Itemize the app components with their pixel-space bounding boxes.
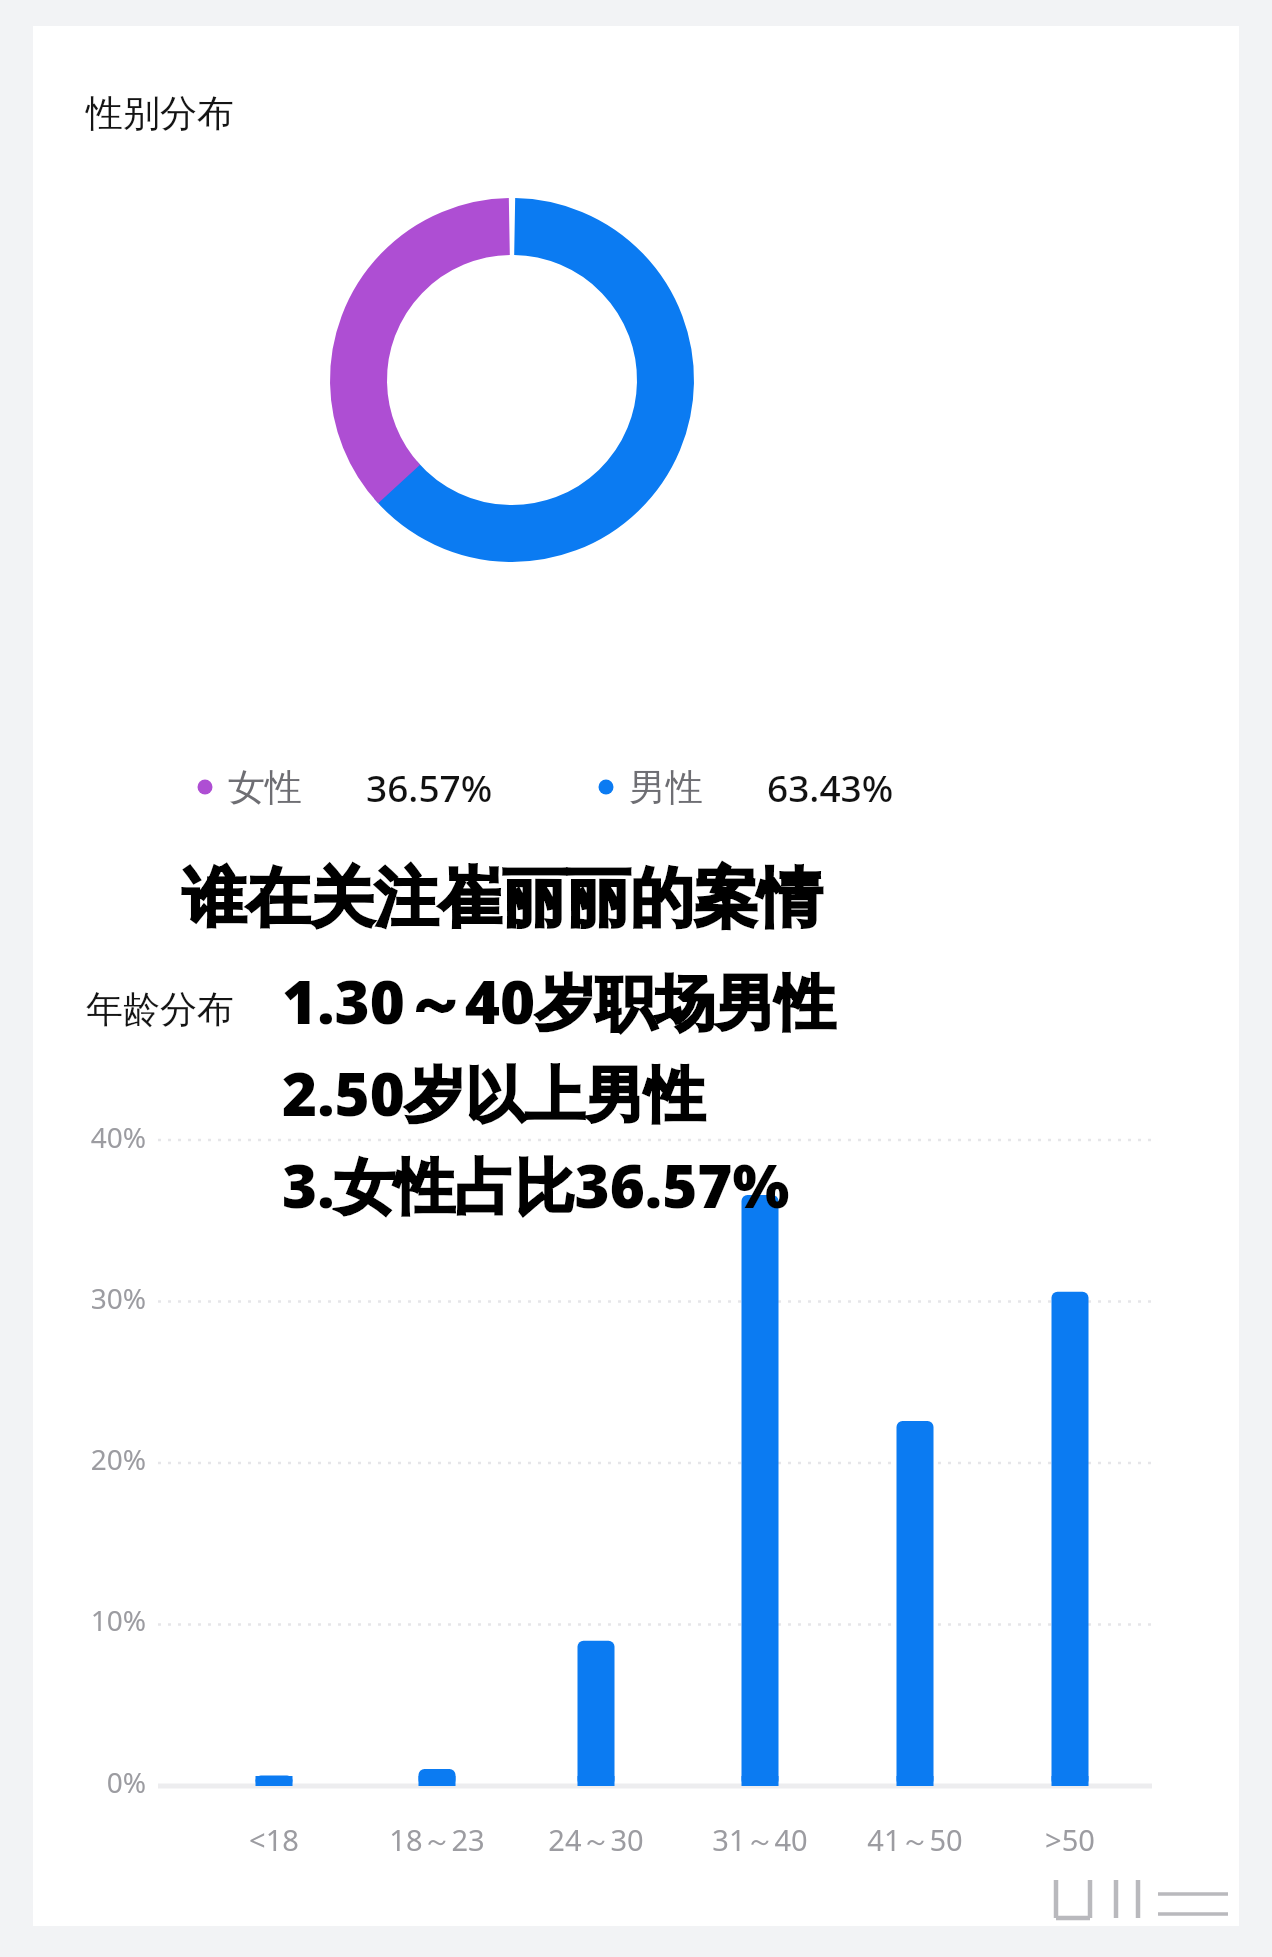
- staticText: 20%: [30, 1440, 146, 1478]
- staticText: 31～40: [670, 1820, 850, 1860]
- staticText: 2.50岁以上男性: [282, 1052, 705, 1134]
- staticText: 10%: [30, 1601, 146, 1639]
- staticText: 0%: [30, 1763, 146, 1801]
- button[interactable]: 年龄分布: [86, 986, 234, 1033]
- staticText: 1.30～40岁职场男性: [282, 960, 836, 1042]
- staticText: >50: [980, 1820, 1160, 1859]
- staticText: 男性: [629, 764, 703, 811]
- staticText: 41～50: [825, 1820, 1005, 1860]
- button[interactable]: 男性: [597, 762, 894, 812]
- staticText: <18: [184, 1820, 364, 1859]
- staticText: 女性: [228, 764, 302, 811]
- button[interactable]: 女性: [196, 762, 493, 812]
- other: App watermark: [1046, 1872, 1236, 1930]
- staticText: 3.女性占比36.57%: [282, 1144, 790, 1226]
- button[interactable]: 性别分布: [86, 90, 234, 137]
- staticText: 年龄分布: [86, 986, 234, 1033]
- staticText: 40%: [30, 1118, 146, 1156]
- staticText: 36.57%: [366, 762, 493, 812]
- staticText: 谁在关注崔丽丽的案情: [182, 858, 822, 939]
- staticText: 18～23: [347, 1820, 527, 1860]
- staticText: 63.43%: [767, 762, 894, 812]
- staticText: 24～30: [506, 1820, 686, 1860]
- staticText: 性别分布: [86, 90, 234, 137]
- staticText: 30%: [30, 1279, 146, 1317]
